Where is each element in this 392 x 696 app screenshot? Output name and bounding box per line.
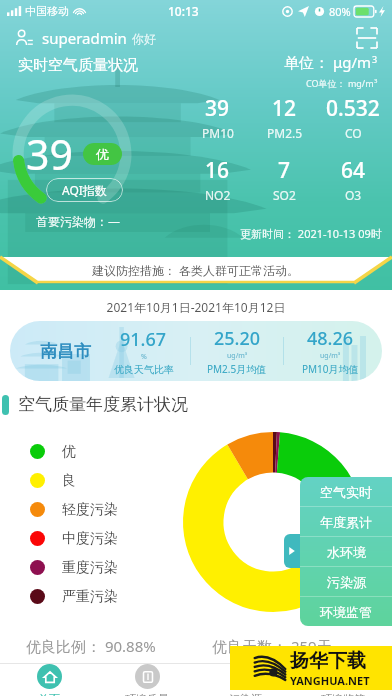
staticText: AQI指数 [62, 182, 107, 198]
staticText: 空气实时 [320, 484, 372, 500]
staticText: 建议防控措施： 各类人群可正常活动。 [92, 262, 300, 278]
staticText: 10:13 [168, 3, 199, 19]
button[interactable]: 南昌市 [10, 321, 382, 381]
staticText: 环境监管 [320, 604, 372, 620]
staticText: PM2.5月均值 [207, 362, 267, 376]
button[interactable]: 污染源 [196, 664, 294, 696]
button[interactable]: 环境监管 [300, 597, 392, 626]
staticText: 空气质量年度累计状况 [18, 394, 188, 415]
staticText: 优良天数： 259天 [212, 636, 392, 656]
button[interactable]: 首页 [0, 664, 98, 696]
staticText: 更新时间： 2021-10-13 09时 [240, 226, 382, 241]
button[interactable]: 环境质量 [98, 664, 196, 696]
staticText: 优良比例： 90.88% [26, 636, 196, 656]
staticText: 64 [341, 156, 366, 185]
staticText: 中度污染 [62, 530, 118, 548]
button[interactable]: 空气实时 [300, 477, 392, 506]
staticText: NO2 [205, 187, 231, 203]
staticText: 0.532 [326, 94, 380, 123]
staticText: 扬华下载 [290, 649, 366, 673]
staticText: 优 [96, 146, 109, 162]
staticText: 水环境 [327, 544, 366, 560]
staticText: 单位： μg/m [284, 52, 372, 72]
staticText: 优良天气比率 [114, 363, 174, 376]
staticText: 优 [62, 443, 76, 461]
staticText: SO2 [273, 187, 296, 203]
button[interactable]: User profile [10, 25, 36, 51]
button[interactable]: 环境监管 [294, 664, 392, 696]
staticText: 中国移动 [25, 4, 69, 18]
staticText: 污染源 [229, 692, 262, 696]
staticText: 39 [205, 94, 230, 123]
staticText: 首要污染物：— [36, 213, 121, 229]
staticText: 轻度污染 [62, 501, 118, 519]
staticText: CO单位： mg/m [306, 77, 374, 89]
button[interactable]: AQI指数 [46, 178, 123, 202]
staticText: CO [345, 125, 362, 141]
staticText: 污染源 [327, 574, 366, 590]
staticText: PM10月均值 [302, 362, 359, 376]
staticText: 良 [62, 472, 76, 490]
staticText: 你好 [132, 31, 156, 46]
button[interactable]: Scan QR code [352, 23, 382, 53]
staticText: 80% [329, 4, 351, 19]
staticText: 25.20 [214, 326, 261, 351]
staticText: 重度污染 [62, 559, 118, 577]
staticText: ug/m³ [320, 351, 341, 361]
staticText: 严重污染 [62, 588, 118, 606]
button[interactable]: 水环境 [300, 537, 392, 566]
staticText: 环境监管 [321, 692, 365, 696]
staticText: 48.26 [307, 326, 354, 351]
staticText: 环境质量 [125, 692, 169, 696]
button[interactable]: Toggle menu [284, 534, 300, 568]
button[interactable]: 年度累计 [300, 507, 392, 536]
staticText: 12 [272, 94, 297, 123]
staticText: PM2.5 [267, 125, 303, 141]
staticText: 39 [26, 126, 73, 182]
staticText: 16 [205, 156, 230, 185]
staticText: 3 [372, 53, 378, 65]
staticText: 2021年10月1日-2021年10月12日 [0, 299, 392, 315]
staticText: 年度累计 [320, 514, 372, 530]
staticText: ug/m³ [227, 351, 248, 361]
staticText: 7 [278, 156, 291, 185]
staticText: YANGHUA.NET [290, 673, 370, 688]
button[interactable]: 污染源 [300, 567, 392, 596]
staticText: O3 [345, 187, 362, 203]
staticText: 实时空气质量状况 [18, 56, 138, 75]
staticText: 首页 [38, 692, 60, 696]
staticText: % [141, 352, 147, 362]
staticText: PM10 [202, 125, 234, 141]
staticText: 91.67 [120, 327, 167, 352]
staticText: superadmin [42, 28, 127, 48]
staticText: 3 [374, 77, 378, 85]
staticText: 南昌市 [40, 341, 91, 362]
